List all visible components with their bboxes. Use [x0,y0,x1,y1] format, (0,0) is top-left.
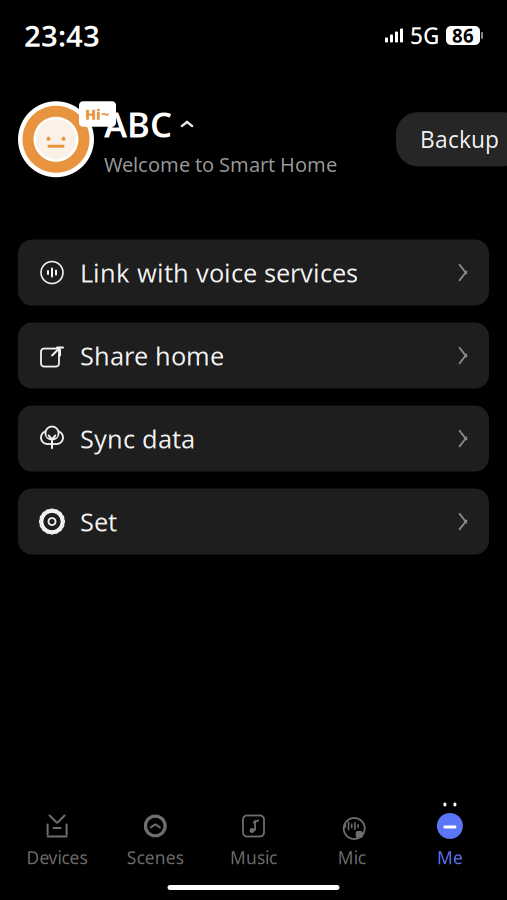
button[interactable]: Me [401,809,499,873]
button[interactable]: Set [18,488,489,554]
button[interactable]: Music [204,809,303,873]
staticText: Set [80,505,117,538]
staticText: ABC [104,101,172,147]
button[interactable]: Sync data [18,405,489,471]
staticText: Mic [338,846,366,869]
staticText: Music [230,846,277,869]
staticText: Devices [27,846,88,869]
staticText: Link with voice services [80,256,358,289]
button[interactable]: Scenes [106,809,204,873]
button[interactable]: Link with voice services [18,239,489,305]
staticText: Sync data [80,422,195,455]
staticText: Share home [80,339,224,372]
button[interactable]: Share home [18,322,489,388]
staticText: 5G [410,20,439,50]
staticText: Welcome to Smart Home [104,151,337,178]
staticText: Scenes [127,846,184,869]
button[interactable]: Mic [303,809,401,873]
button[interactable]: ABC [104,101,194,147]
staticText: 86 [452,23,474,48]
staticText: Hi~ [85,104,110,124]
staticText: 23:43 [24,16,100,55]
button[interactable]: Devices [8,809,106,873]
button[interactable]: Backup [396,112,507,166]
staticText: Backup [420,124,499,154]
staticText: Me [437,846,463,869]
